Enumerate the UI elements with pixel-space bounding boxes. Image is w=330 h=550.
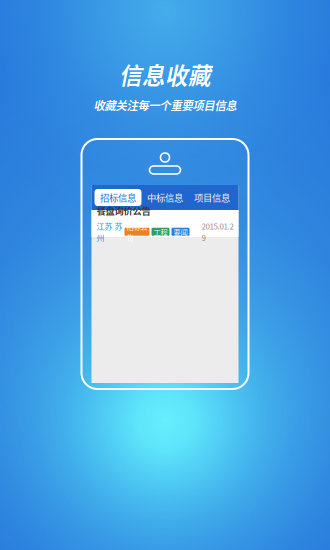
staticText: 收藏关注每一个重要项目信息 <box>93 97 236 113</box>
button[interactable]: 餐盘询价公告 <box>91 210 238 237</box>
staticText: 要闻 <box>173 226 187 237</box>
button[interactable]: 项目信息 <box>188 189 235 206</box>
staticText: 2015.01.29 <box>201 220 233 243</box>
staticText: 项目信息 <box>194 191 230 204</box>
staticText: 招标公告 <box>126 221 147 242</box>
staticText: 江苏 苏州 <box>96 220 122 243</box>
staticText: 工程 <box>153 226 167 237</box>
button[interactable]: 中标信息 <box>141 189 188 206</box>
staticText: 信息收藏 <box>119 58 211 90</box>
staticText: 招标信息 <box>100 191 136 204</box>
staticText: 餐盘询价公告 <box>96 204 150 217</box>
button[interactable]: 招标信息 <box>94 189 141 206</box>
staticText: 中标信息 <box>147 191 183 204</box>
